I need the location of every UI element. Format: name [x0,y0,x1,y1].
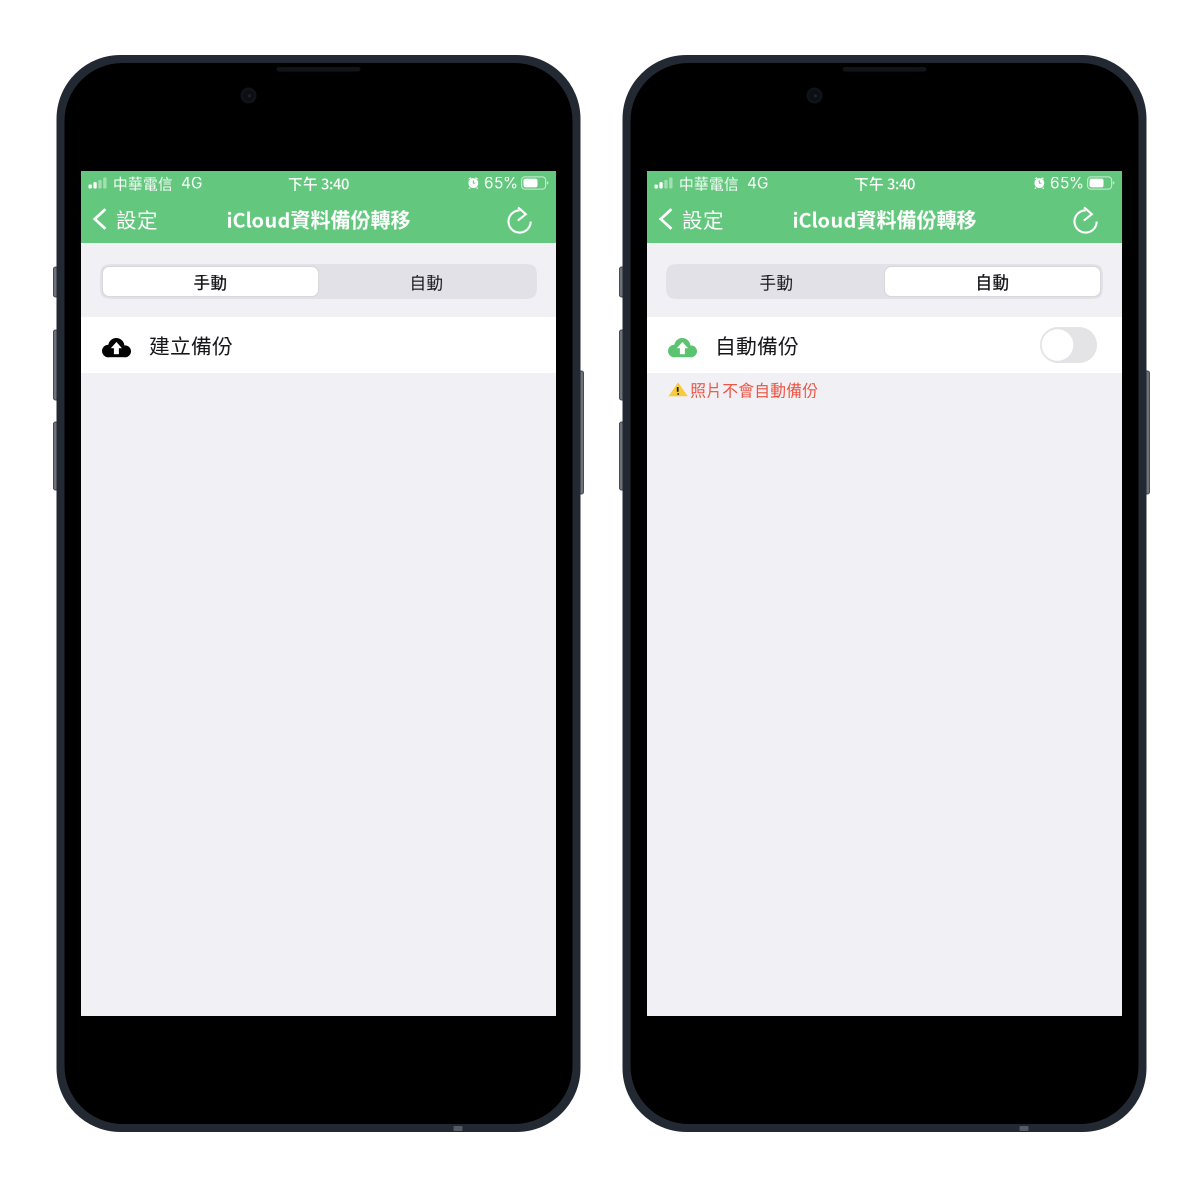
button[interactable]: 自動 [884,266,1100,296]
staticText: 自動 [975,269,1009,293]
staticText: 4G [747,174,768,192]
staticText: iCloud資料備份轉移 [226,204,410,233]
staticText: 65% [484,174,518,192]
staticText: 手動 [193,269,227,293]
staticText: 自動 [409,269,443,293]
staticText: 照片不會自動備份 [690,378,818,401]
staticText: 65% [1050,174,1084,192]
staticText: 手動 [759,269,793,293]
staticText: 下午 3:40 [288,172,349,194]
button[interactable]: Refresh [1064,195,1108,243]
button[interactable]: 設定 [84,195,168,243]
staticText: 中華電信 [113,172,173,194]
staticText: 中華電信 [679,172,739,194]
button[interactable]: 手動 [102,266,318,296]
button[interactable]: Refresh [498,195,542,243]
button[interactable]: 自動 [318,266,534,296]
button[interactable]: 設定 [650,195,734,243]
staticText: 設定 [116,204,158,234]
staticText: 下午 3:40 [854,172,915,194]
staticText: 自動備份 [715,330,799,360]
staticText: 設定 [682,204,724,234]
button[interactable]: 手動 [668,266,884,296]
staticText: 建立備份 [149,330,233,360]
staticText: 4G [181,174,202,192]
staticText: iCloud資料備份轉移 [792,204,976,233]
button[interactable]: 建立備份 [81,317,556,373]
button[interactable]: Automatic backup, off [1040,327,1097,363]
button[interactable]: 自動備份 [647,317,1122,373]
